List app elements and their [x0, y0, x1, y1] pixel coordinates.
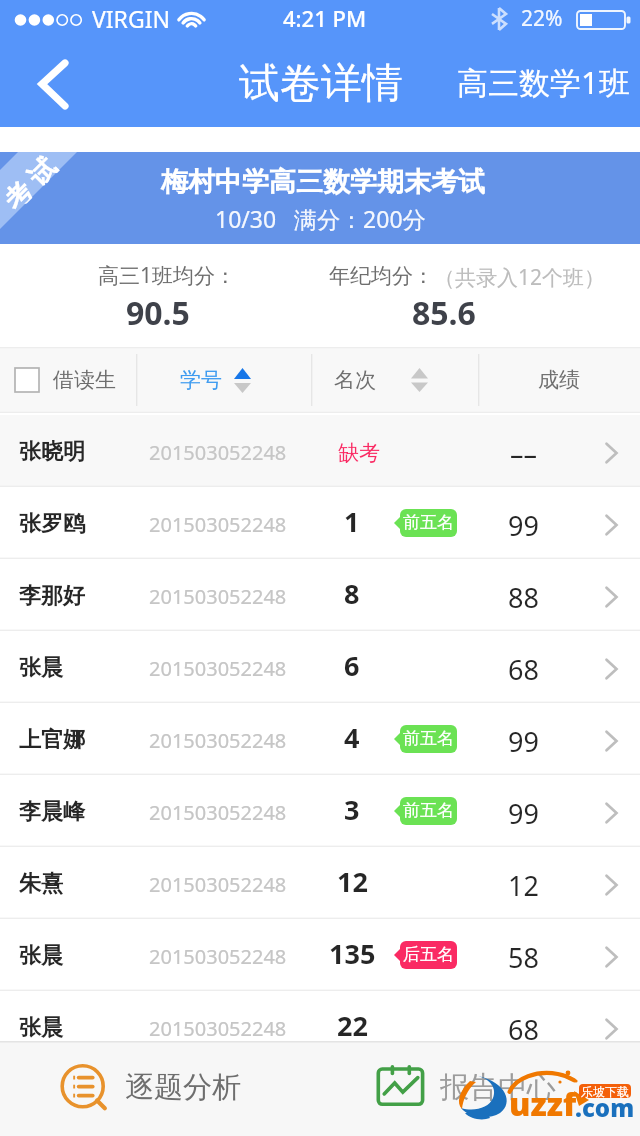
- staticText: 高三1班均分：: [98, 261, 237, 290]
- staticText: 201503052248: [149, 727, 287, 754]
- staticText: uzzf: [509, 1082, 577, 1126]
- staticText: 90.5: [126, 291, 190, 335]
- staticText: 12: [508, 867, 539, 904]
- staticText: 201503052248: [149, 439, 287, 466]
- button[interactable]: 成绩: [478, 347, 640, 413]
- button[interactable]: 张罗鸥: [0, 487, 640, 559]
- staticText: 99: [508, 507, 539, 544]
- staticText: 4: [344, 719, 360, 756]
- staticText: 乐坡下载: [581, 1084, 629, 1099]
- button[interactable]: 张晓明: [0, 415, 640, 487]
- staticText: 年纪均分：: [329, 263, 434, 289]
- staticText: 后五名: [403, 944, 454, 965]
- staticText: 3: [344, 791, 360, 828]
- staticText: 张晨: [19, 942, 63, 970]
- staticText: 试: [21, 151, 60, 189]
- staticText: 135: [329, 935, 376, 972]
- staticText: 学号: [180, 367, 222, 393]
- staticText: 名次: [334, 367, 376, 393]
- staticText: .com: [575, 1091, 635, 1124]
- staticText: 201503052248: [149, 799, 287, 826]
- staticText: 1: [344, 503, 360, 540]
- staticText: 前五名: [403, 728, 454, 749]
- staticText: 前五名: [403, 800, 454, 821]
- button[interactable]: 李晨峰: [0, 775, 640, 847]
- staticText: 201503052248: [149, 511, 287, 538]
- staticText: 张晨: [19, 1014, 63, 1042]
- staticText: 99: [508, 723, 539, 760]
- staticText: 68: [508, 651, 539, 688]
- staticText: 试卷详情: [239, 58, 403, 110]
- staticText: 6: [344, 647, 360, 684]
- staticText: 考: [0, 175, 36, 213]
- staticText: ––: [510, 435, 537, 472]
- staticText: 201503052248: [149, 583, 287, 610]
- staticText: 张晨: [19, 654, 63, 682]
- staticText: 高三数学1班: [457, 61, 630, 103]
- button[interactable]: 报告中心: [320, 1041, 640, 1136]
- button[interactable]: 朱熹: [0, 847, 640, 919]
- staticText: 99: [508, 795, 539, 832]
- staticText: 逐题分析: [125, 1069, 241, 1106]
- staticText: 前五名: [403, 512, 454, 533]
- button[interactable]: Back: [0, 36, 100, 127]
- staticText: （共录入12个班）: [434, 263, 606, 292]
- staticText: VIRGIN: [92, 3, 170, 34]
- staticText: 68: [508, 1011, 539, 1048]
- staticText: 李那好: [19, 582, 85, 610]
- staticText: 22: [337, 1007, 368, 1044]
- staticText: 朱熹: [19, 870, 63, 898]
- staticText: 58: [508, 939, 539, 976]
- staticText: 85.6: [412, 291, 476, 335]
- button[interactable]: 李那好: [0, 559, 640, 631]
- staticText: 张罗鸥: [19, 510, 85, 538]
- staticText: 12: [337, 863, 368, 900]
- staticText: 报告中心: [440, 1069, 556, 1106]
- staticText: 10/30 满分：200分: [215, 203, 426, 234]
- button[interactable]: 张晨: [0, 919, 640, 991]
- button[interactable]: 学号: [136, 347, 311, 413]
- button[interactable]: 张晨: [0, 631, 640, 703]
- staticText: 201503052248: [149, 943, 287, 970]
- staticText: 8: [344, 575, 360, 612]
- staticText: 88: [508, 579, 539, 616]
- staticText: 4:21 PM: [283, 3, 367, 33]
- staticText: 22%: [521, 4, 563, 33]
- staticText: 201503052248: [149, 871, 287, 898]
- staticText: 李晨峰: [19, 798, 85, 826]
- button[interactable]: 名次: [311, 347, 478, 413]
- staticText: 201503052248: [149, 655, 287, 682]
- button[interactable]: 张晨: [0, 991, 640, 1063]
- staticText: 张晓明: [19, 438, 85, 466]
- staticText: 缺考: [338, 440, 380, 466]
- staticText: 201503052248: [149, 1015, 287, 1042]
- button[interactable]: 逐题分析: [0, 1041, 320, 1136]
- staticText: 借读生: [53, 367, 116, 393]
- staticText: 梅村中学高三数学期末考试: [161, 165, 485, 199]
- button[interactable]: 上官娜: [0, 703, 640, 775]
- staticText: 上官娜: [19, 726, 85, 754]
- staticText: 成绩: [538, 367, 580, 393]
- button[interactable]: 借读生: [0, 347, 136, 413]
